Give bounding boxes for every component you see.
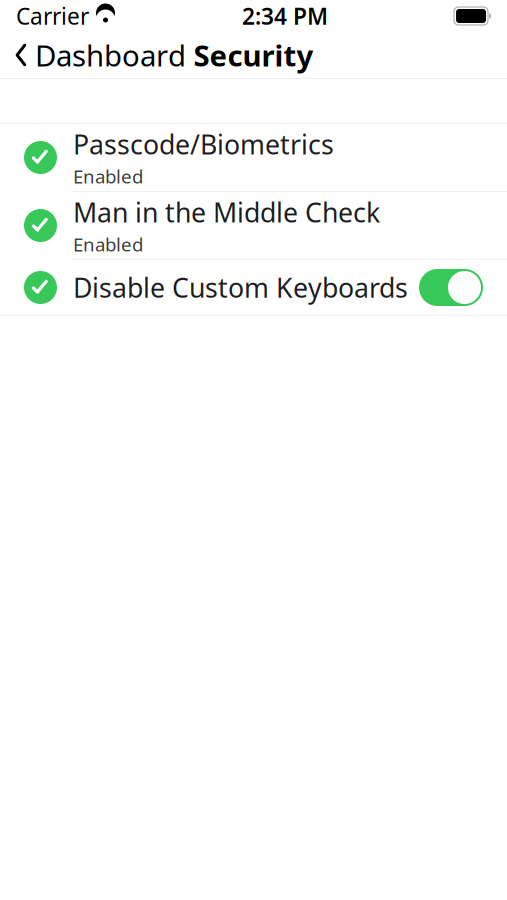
button[interactable]: Dashboard bbox=[0, 32, 200, 78]
staticText: Disable Custom Keyboards bbox=[73, 270, 408, 305]
staticText: Security bbox=[193, 35, 313, 74]
staticText: Enabled bbox=[73, 164, 143, 189]
button[interactable]: Disable Custom Keyboards bbox=[0, 260, 507, 315]
staticText: Passcode/Biometrics bbox=[73, 126, 334, 162]
staticText: Carrier bbox=[16, 1, 89, 31]
staticText: 2:34 PM bbox=[242, 1, 328, 31]
button[interactable]: Passcode/Biometrics bbox=[0, 124, 507, 191]
staticText: Enabled bbox=[73, 232, 143, 257]
staticText: Dashboard bbox=[35, 35, 186, 74]
button[interactable]: Man in the Middle Check bbox=[0, 192, 507, 259]
staticText: Man in the Middle Check bbox=[73, 194, 380, 230]
